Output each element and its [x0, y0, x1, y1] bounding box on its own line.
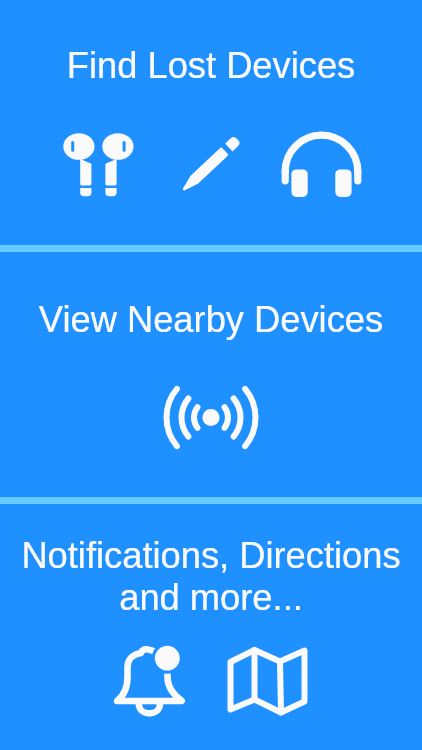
button[interactable]: Directions: [222, 636, 314, 720]
button[interactable]: View Nearby Devices: [0, 252, 422, 497]
button[interactable]: Find Lost Devices: [0, 0, 422, 245]
staticText: Find Lost Devices: [0, 45, 422, 86]
staticText: Notifications, Directions and more...: [4, 535, 418, 618]
button[interactable]: Find lost stylus: [176, 126, 244, 196]
button[interactable]: Find lost earbuds: [56, 126, 142, 204]
button[interactable]: Notifications, Directions and more...: [0, 504, 422, 750]
button[interactable]: Scan for nearby devices: [158, 380, 264, 456]
button[interactable]: Find lost headphones: [274, 126, 368, 204]
button[interactable]: Notifications: [106, 636, 194, 724]
staticText: View Nearby Devices: [0, 299, 422, 340]
